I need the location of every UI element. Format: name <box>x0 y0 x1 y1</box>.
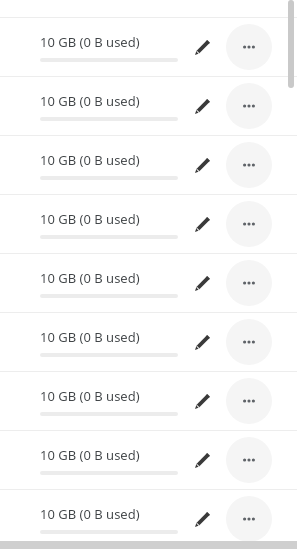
staticText: 10 GB (0 B used) <box>40 151 140 169</box>
button[interactable]: More options <box>226 201 272 247</box>
staticText: 10 GB (0 B used) <box>40 505 140 523</box>
button[interactable]: More options <box>226 83 272 129</box>
button[interactable]: More options <box>226 496 272 542</box>
button[interactable]: More options <box>226 319 272 365</box>
button[interactable]: Edit <box>188 446 216 474</box>
staticText: 10 GB (0 B used) <box>40 446 140 464</box>
staticText: 10 GB (0 B used) <box>40 387 140 405</box>
staticText: 10 GB (0 B used) <box>40 328 140 346</box>
staticText: 10 GB (0 B used) <box>40 210 140 228</box>
button[interactable]: Edit <box>188 269 216 297</box>
button[interactable]: 10 GB (0 B used) <box>0 490 297 548</box>
button[interactable]: Edit <box>188 505 216 533</box>
button[interactable]: Edit <box>188 328 216 356</box>
button[interactable]: More options <box>226 24 272 70</box>
button[interactable]: Edit <box>188 151 216 179</box>
button[interactable]: 10 GB (0 B used) <box>0 136 297 194</box>
button[interactable]: 10 GB (0 B used) <box>0 372 297 430</box>
button[interactable]: Edit <box>188 210 216 238</box>
staticText: 10 GB (0 B used) <box>40 92 140 110</box>
button[interactable]: Edit <box>188 387 216 415</box>
button[interactable]: 10 GB (0 B used) <box>0 254 297 312</box>
button[interactable]: More options <box>226 142 272 188</box>
button[interactable]: 10 GB (0 B used) <box>0 313 297 371</box>
button[interactable]: More options <box>226 437 272 483</box>
staticText: 10 GB (0 B used) <box>40 33 140 51</box>
staticText: 10 GB (0 B used) <box>40 269 140 287</box>
button[interactable] <box>0 0 297 17</box>
button[interactable]: 10 GB (0 B used) <box>0 18 297 76</box>
button[interactable]: Edit <box>188 92 216 120</box>
button[interactable]: More options <box>226 378 272 424</box>
button[interactable]: 10 GB (0 B used) <box>0 431 297 489</box>
button[interactable]: More options <box>226 260 272 306</box>
button[interactable]: 10 GB (0 B used) <box>0 77 297 135</box>
button[interactable]: Edit <box>188 33 216 61</box>
button[interactable]: 10 GB (0 B used) <box>0 195 297 253</box>
